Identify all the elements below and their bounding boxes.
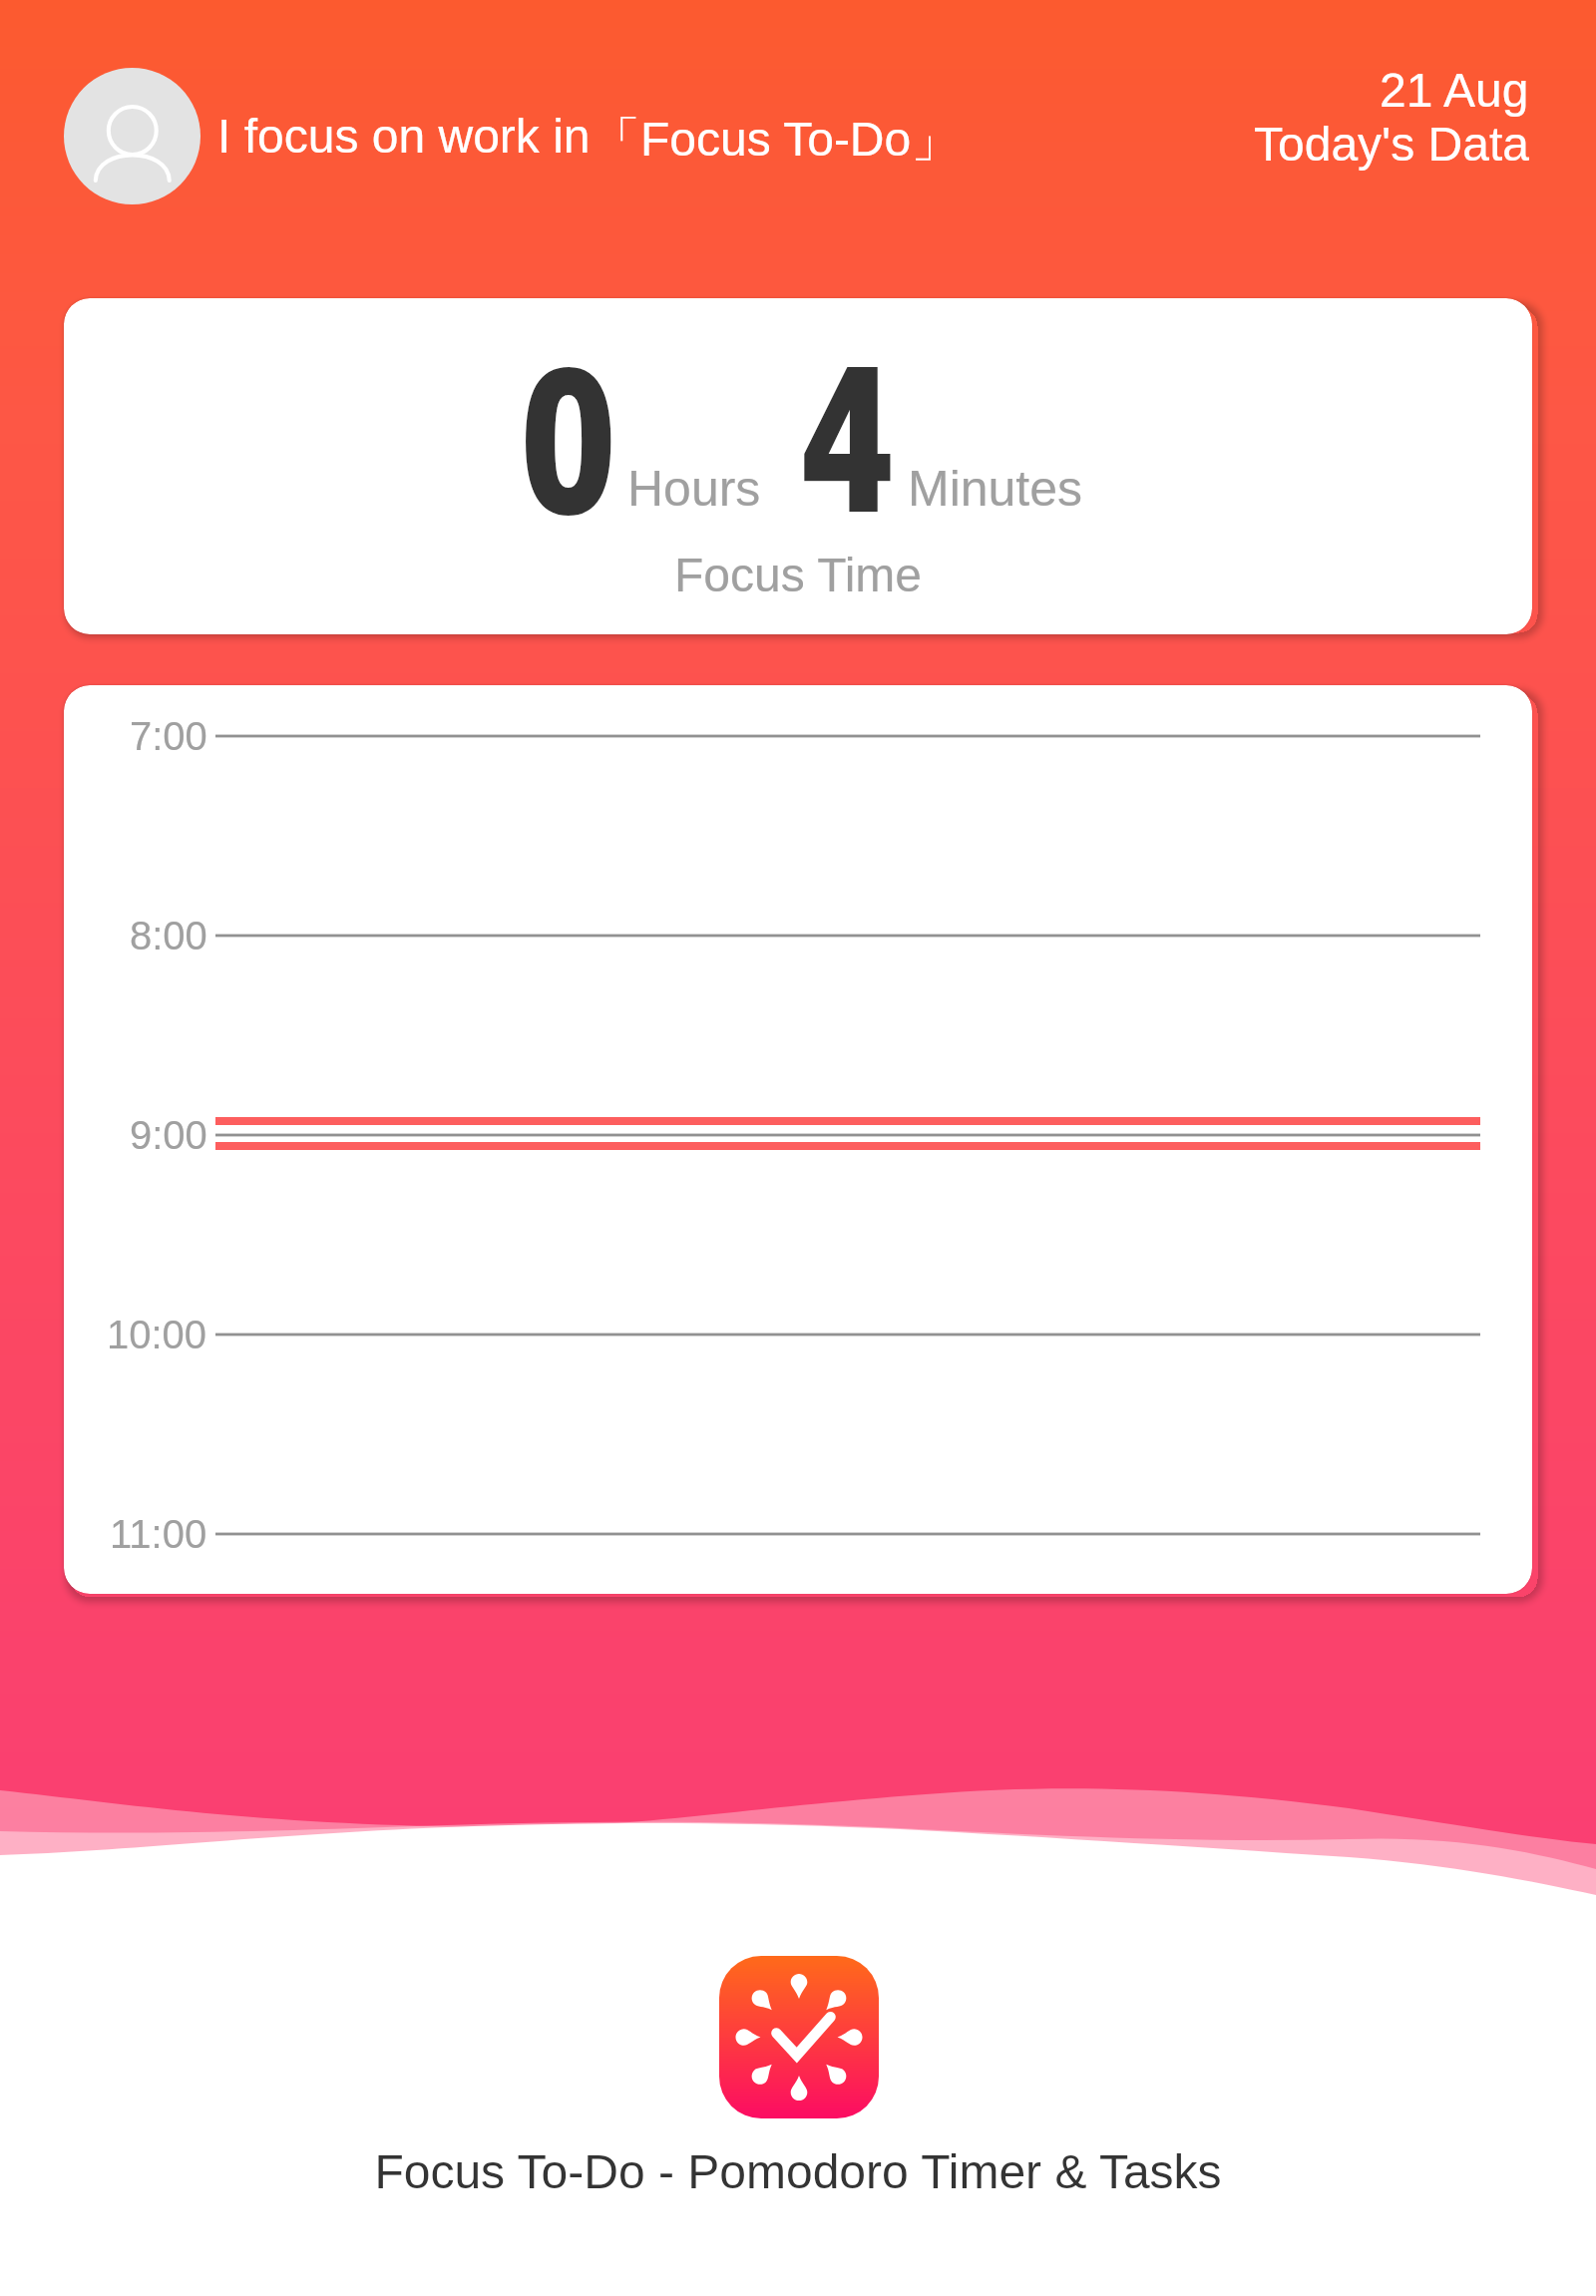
staticText: 8:00 — [130, 914, 207, 958]
staticText: Focus To-Do - Pomodoro Timer & Tasks — [0, 2145, 1596, 2199]
button[interactable]: 0 — [64, 298, 1532, 634]
staticText: 0 — [524, 298, 613, 569]
staticText: Minutes — [908, 461, 1083, 517]
staticText: 11:00 — [110, 1512, 207, 1557]
staticText: Focus Time — [64, 549, 1532, 602]
staticText: 10:00 — [107, 1313, 207, 1357]
staticText: 「Focus To-Do」 — [593, 110, 960, 170]
staticText: Today's Data — [1254, 118, 1529, 172]
button[interactable]: 7:00 — [64, 685, 1532, 1594]
staticText: 9:00 — [130, 1113, 207, 1158]
staticText: I focus on work in — [217, 110, 591, 164]
staticText: 7:00 — [130, 714, 207, 759]
staticText: Hours — [627, 461, 761, 517]
button[interactable]: Focus To-Do app icon — [719, 1956, 879, 2118]
staticText: 4 — [803, 298, 893, 569]
button[interactable]: Profile avatar — [64, 68, 200, 204]
staticText: 21 Aug — [1380, 64, 1529, 118]
